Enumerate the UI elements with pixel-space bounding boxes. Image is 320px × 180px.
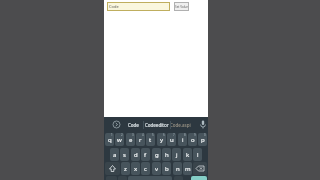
staticText: 8 — [184, 133, 186, 137]
staticText: b — [165, 165, 169, 173]
button[interactable]: w — [115, 133, 124, 146]
button[interactable]: n — [173, 162, 182, 175]
staticText: g — [155, 151, 159, 159]
button[interactable] — [112, 120, 121, 129]
staticText: x — [134, 165, 138, 173]
staticText: d — [134, 151, 138, 159]
staticText: m — [185, 165, 191, 173]
staticText: 9 — [194, 133, 196, 137]
staticText: 2 — [121, 133, 123, 137]
button[interactable]: Set Value — [174, 2, 189, 11]
button[interactable]: l — [193, 148, 202, 161]
button[interactable] — [191, 176, 207, 180]
staticText: y — [160, 136, 164, 144]
button[interactable]: h — [162, 148, 171, 161]
staticText: f — [144, 151, 147, 159]
staticText: i — [182, 136, 184, 144]
button[interactable]: i — [178, 133, 187, 146]
staticText: 0 — [204, 133, 206, 137]
button[interactable]: Code.aspi — [169, 117, 191, 132]
staticText: 5 — [152, 133, 154, 137]
button[interactable]: u — [167, 133, 176, 146]
staticText: Codeeditor — [145, 122, 169, 128]
button[interactable]: j — [172, 148, 181, 161]
staticText: r — [139, 136, 142, 144]
button[interactable]: v — [152, 162, 161, 175]
button[interactable]: Code — [107, 2, 170, 11]
button[interactable]: t — [146, 133, 155, 146]
button[interactable]: k — [183, 148, 192, 161]
staticText: 7 — [173, 133, 175, 137]
staticText: v — [155, 165, 159, 173]
button[interactable]: x — [131, 162, 140, 175]
button[interactable] — [193, 162, 207, 175]
staticText: s — [123, 151, 126, 159]
button[interactable]: q — [105, 133, 114, 146]
staticText: e — [129, 136, 133, 144]
button[interactable]: g — [152, 148, 161, 161]
staticText: n — [176, 165, 180, 173]
staticText: u — [170, 136, 174, 144]
staticText: p — [201, 136, 205, 144]
staticText: c — [144, 165, 147, 173]
staticText: Set Value — [175, 5, 188, 9]
button[interactable]: z — [121, 162, 130, 175]
button[interactable]: Codeeditor — [144, 117, 169, 132]
staticText: h — [165, 151, 169, 159]
staticText: z — [124, 165, 127, 173]
staticText: t — [149, 136, 152, 144]
staticText: Code.aspi — [170, 122, 191, 128]
staticText: q — [108, 136, 112, 144]
staticText: j — [176, 151, 178, 159]
button[interactable]: y — [157, 133, 166, 146]
staticText: o — [191, 136, 195, 144]
button[interactable]: d — [131, 148, 140, 161]
staticText: 6 — [163, 133, 165, 137]
button[interactable]: c — [141, 162, 150, 175]
button[interactable]: e — [126, 133, 135, 146]
staticText: l — [197, 151, 199, 159]
button[interactable]: a — [110, 148, 119, 161]
button[interactable]: f — [141, 148, 150, 161]
staticText: a — [113, 151, 117, 159]
button[interactable]: r — [136, 133, 145, 146]
staticText: Code — [128, 122, 139, 128]
button[interactable]: o — [188, 133, 197, 146]
staticText: 3 — [132, 133, 134, 137]
staticText: k — [186, 151, 190, 159]
staticText: 4 — [142, 133, 144, 137]
button[interactable]: m — [183, 162, 192, 175]
button[interactable]: s — [120, 148, 129, 161]
button[interactable]: Code — [124, 117, 142, 132]
staticText: w — [117, 136, 122, 144]
staticText: Code — [109, 4, 119, 9]
button[interactable]: p — [198, 133, 207, 146]
button[interactable]: b — [162, 162, 171, 175]
staticText: 1 — [111, 133, 113, 137]
button[interactable] — [105, 162, 120, 175]
button[interactable] — [199, 120, 207, 130]
